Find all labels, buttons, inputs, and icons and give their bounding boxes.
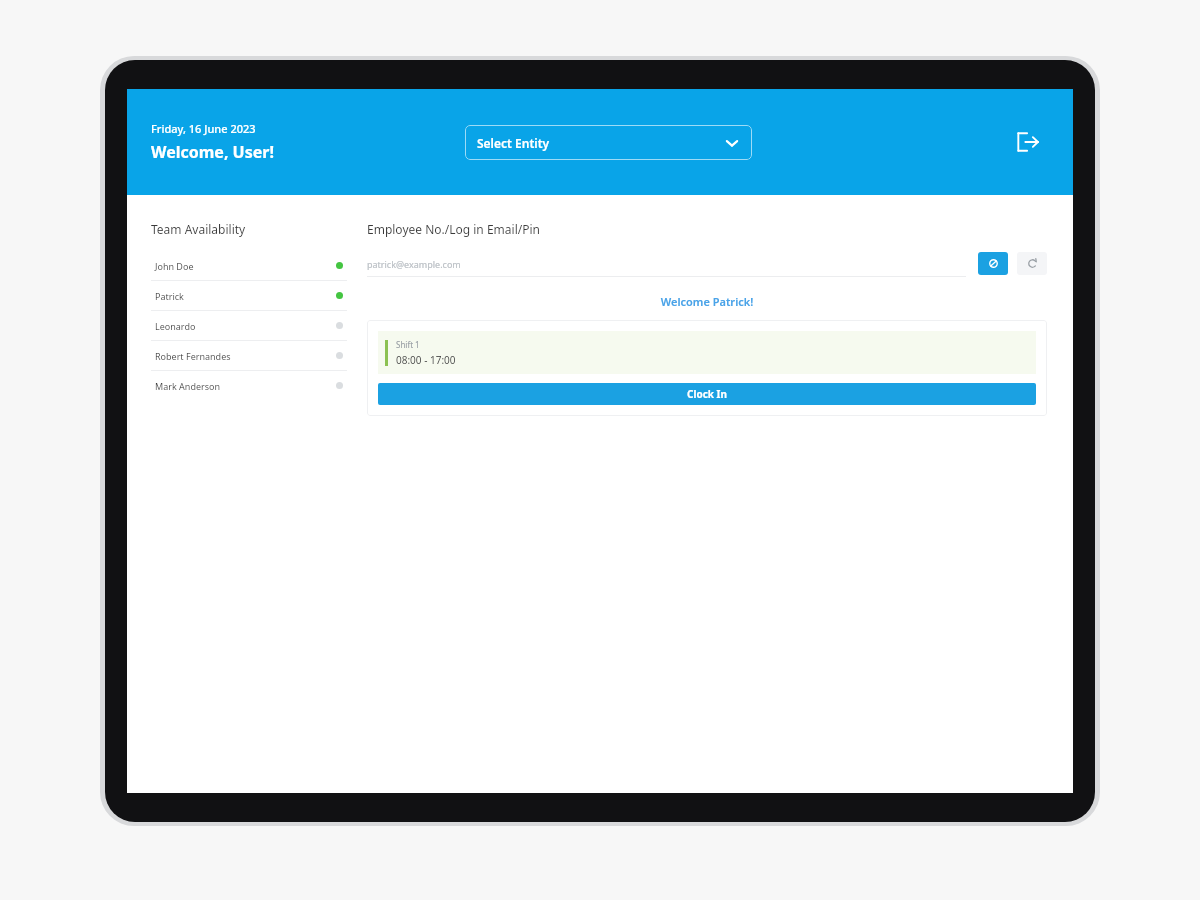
staticText: Patrick — [155, 290, 336, 302]
button[interactable]: Patrick — [151, 281, 347, 310]
staticText: patrick@example.com — [367, 258, 461, 270]
staticText: Team Availability — [151, 221, 246, 237]
staticText: Clock In — [687, 387, 727, 401]
staticText: Welcome, User! — [151, 141, 274, 163]
button[interactable]: Log out — [1011, 125, 1045, 159]
staticText: Robert Fernandes — [155, 350, 336, 362]
button[interactable]: Leonardo — [151, 311, 347, 340]
staticText: Mark Anderson — [155, 380, 336, 392]
staticText: 08:00 - 17:00 — [396, 353, 456, 367]
staticText: Welcome Patrick! — [367, 294, 1047, 309]
button[interactable]: Submit — [978, 252, 1008, 275]
button[interactable]: Refresh — [1017, 252, 1047, 275]
button[interactable]: Clock In — [378, 383, 1036, 405]
staticText: Friday, 16 June 2023 — [151, 121, 256, 136]
staticText: Shift 1 — [396, 339, 420, 350]
staticText: Select Entity — [477, 135, 550, 151]
button[interactable]: John Doe — [151, 251, 347, 280]
staticText: Employee No./Log in Email/Pin — [367, 221, 540, 237]
staticText: Leonardo — [155, 320, 336, 332]
button[interactable]: Mark Anderson — [151, 371, 347, 400]
staticText: John Doe — [155, 260, 336, 272]
button[interactable]: Select Entity — [465, 125, 752, 160]
button[interactable]: patrick@example.com — [367, 250, 966, 277]
button[interactable]: Robert Fernandes — [151, 341, 347, 370]
